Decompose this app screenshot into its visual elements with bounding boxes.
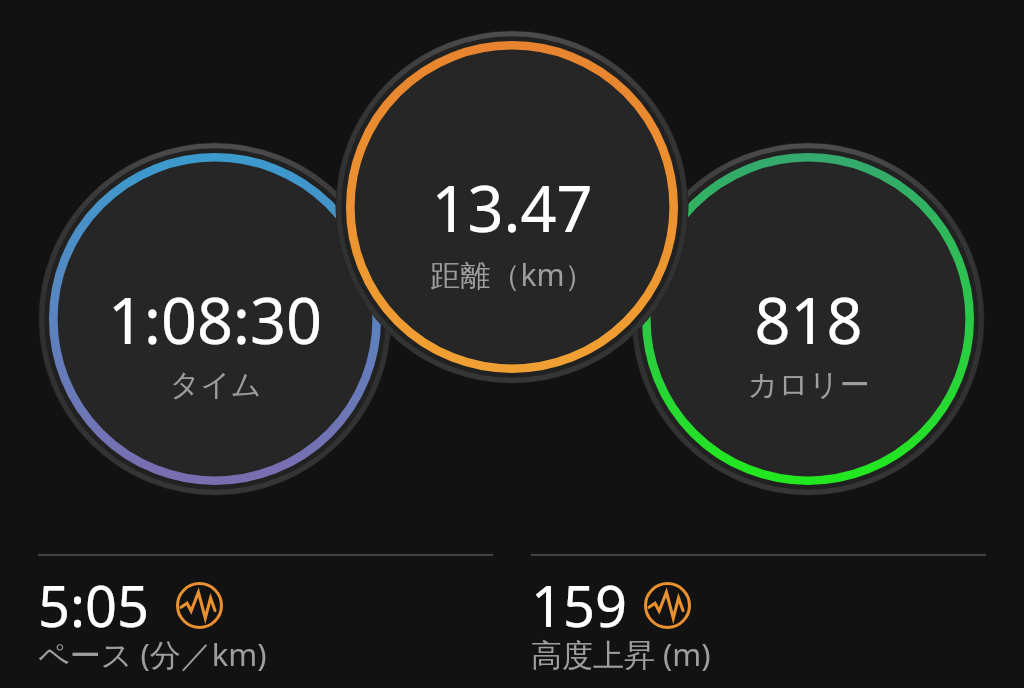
staticText: 距離（km）	[430, 254, 595, 295]
staticText: 159	[531, 567, 628, 643]
staticText: 13.47	[431, 165, 593, 251]
button[interactable]: Elevation gain details	[644, 582, 691, 629]
staticText: 1:08:30	[108, 277, 322, 363]
staticText: カロリー	[747, 366, 870, 404]
button[interactable]: 13.47	[351, 46, 673, 368]
button[interactable]: 1:08:30	[54, 158, 376, 480]
staticText: 818	[754, 277, 863, 363]
staticText: 高度上昇 (m)	[531, 633, 711, 675]
button[interactable]: Pace details	[176, 582, 223, 629]
button[interactable]: 5:05	[38, 540, 493, 688]
staticText: 5:05	[38, 567, 150, 643]
staticText: ペース (分／km)	[38, 633, 267, 675]
button[interactable]: 159	[531, 540, 986, 688]
button[interactable]: 818	[647, 158, 969, 480]
staticText: タイム	[169, 366, 262, 404]
